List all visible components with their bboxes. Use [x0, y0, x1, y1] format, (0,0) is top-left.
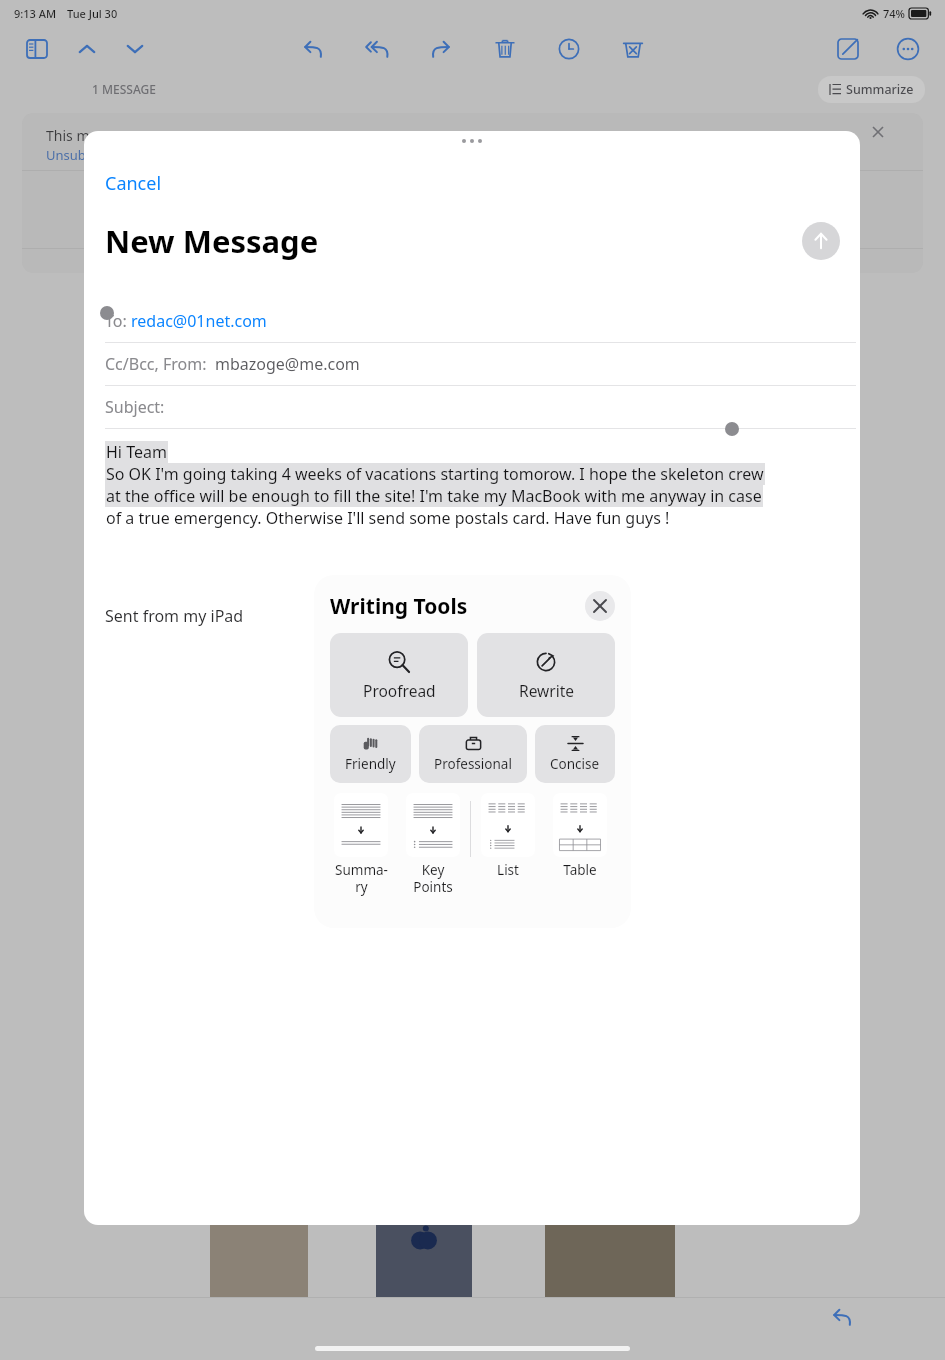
staticText: To: [105, 310, 131, 332]
button[interactable]: Cancel [105, 171, 162, 196]
staticText: mbazoge@me.com [215, 353, 360, 375]
button[interactable]: Delete [488, 32, 522, 66]
button[interactable]: Subject: [84, 386, 860, 429]
staticText: This m [46, 126, 90, 145]
staticText: 1 MESSAGE [92, 81, 156, 97]
button[interactable]: Summarize [818, 76, 925, 103]
button[interactable]: Cc/Bcc, From: [84, 343, 860, 386]
staticText: Writing Tools [330, 592, 468, 621]
staticText: Professional [434, 755, 512, 773]
staticText: Sent from my iPad [105, 605, 244, 627]
button[interactable]: Concise [535, 725, 615, 783]
button[interactable]: To: [84, 300, 860, 343]
button[interactable]: Sidebar [20, 32, 54, 66]
staticText: 74% [883, 6, 905, 21]
button[interactable]: Reply [296, 32, 330, 66]
staticText: Cc/Bcc, From: [105, 353, 215, 375]
button[interactable]: Previous message [70, 32, 104, 66]
button[interactable]: Key Points [402, 793, 464, 896]
button[interactable]: Move to junk [616, 32, 650, 66]
staticText: Key Points [413, 861, 453, 896]
staticText: Proofread [363, 680, 436, 701]
button[interactable]: Rewrite [477, 633, 615, 717]
staticText: Hi Team [106, 441, 167, 463]
staticText: Table [563, 861, 597, 879]
staticText: So OK I'm going taking 4 weeks of vacati… [106, 463, 764, 485]
staticText: Summarize [846, 81, 914, 98]
staticText: Subject: [105, 396, 165, 418]
staticText: Summa- ry [335, 861, 388, 896]
button[interactable]: Send [802, 222, 840, 260]
button[interactable]: Compose [831, 32, 865, 66]
staticText: Tue Jul 30 [67, 6, 118, 21]
staticText: Unsub [46, 146, 86, 164]
button[interactable]: Close [585, 591, 615, 621]
button[interactable]: Reply [825, 1300, 859, 1334]
button[interactable]: Forward [424, 32, 458, 66]
staticText: of a true emergency. Otherwise I'll send… [106, 507, 670, 529]
button[interactable]: More [891, 32, 925, 66]
button[interactable]: Remind me [552, 32, 586, 66]
button[interactable]: Friendly [330, 725, 411, 783]
button[interactable]: Professional [419, 725, 527, 783]
staticText: Cancel [105, 171, 162, 196]
button[interactable]: Summa- ry [330, 793, 392, 896]
button[interactable]: Proofread [330, 633, 468, 717]
staticText: Friendly [345, 755, 396, 773]
staticText: New Message [105, 220, 319, 262]
staticText: Rewrite [519, 680, 574, 701]
staticText: redac@01net.com [131, 310, 267, 332]
staticText: 9:13 AM [14, 6, 57, 21]
staticText: at the office will be enough to fill the… [106, 485, 762, 507]
staticText: List [497, 861, 519, 879]
button[interactable]: Table [549, 793, 611, 879]
button[interactable]: Next message [118, 32, 152, 66]
button[interactable]: List [477, 793, 539, 879]
button[interactable]: Reply all [360, 32, 394, 66]
staticText: Concise [550, 755, 600, 773]
